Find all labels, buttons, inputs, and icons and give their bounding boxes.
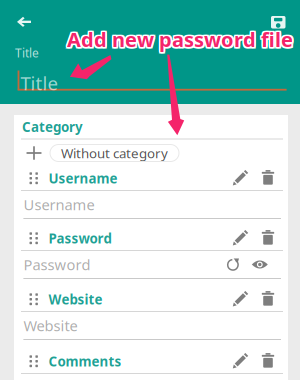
staticText: Add new password file: [68, 27, 294, 54]
staticText: Add new password file: [68, 26, 294, 53]
staticText: Add new password file: [68, 25, 294, 51]
staticText: Without category: [61, 144, 168, 162]
button[interactable]: Comments: [14, 349, 288, 373]
staticText: Website: [48, 290, 102, 308]
staticText: Title: [20, 70, 58, 95]
staticText: Title: [15, 45, 39, 61]
button[interactable]: Username: [14, 166, 288, 190]
staticText: Add new password file: [66, 25, 292, 51]
staticText: Category: [22, 118, 83, 136]
staticText: Password: [48, 229, 111, 247]
button[interactable]: Password: [14, 226, 288, 250]
staticText: Website: [23, 316, 77, 335]
staticText: Comments: [48, 352, 121, 370]
staticText: Add new password file: [67, 26, 293, 53]
button[interactable]: Website: [14, 287, 288, 311]
staticText: Add new password file: [66, 26, 292, 53]
staticText: Add new password file: [67, 27, 293, 54]
staticText: Add new password file: [67, 25, 293, 51]
staticText: Username: [23, 195, 94, 214]
staticText: Username: [48, 169, 117, 187]
staticText: Password: [23, 255, 90, 274]
staticText: Add new password file: [66, 27, 292, 54]
button[interactable]: Without category: [14, 139, 288, 166]
